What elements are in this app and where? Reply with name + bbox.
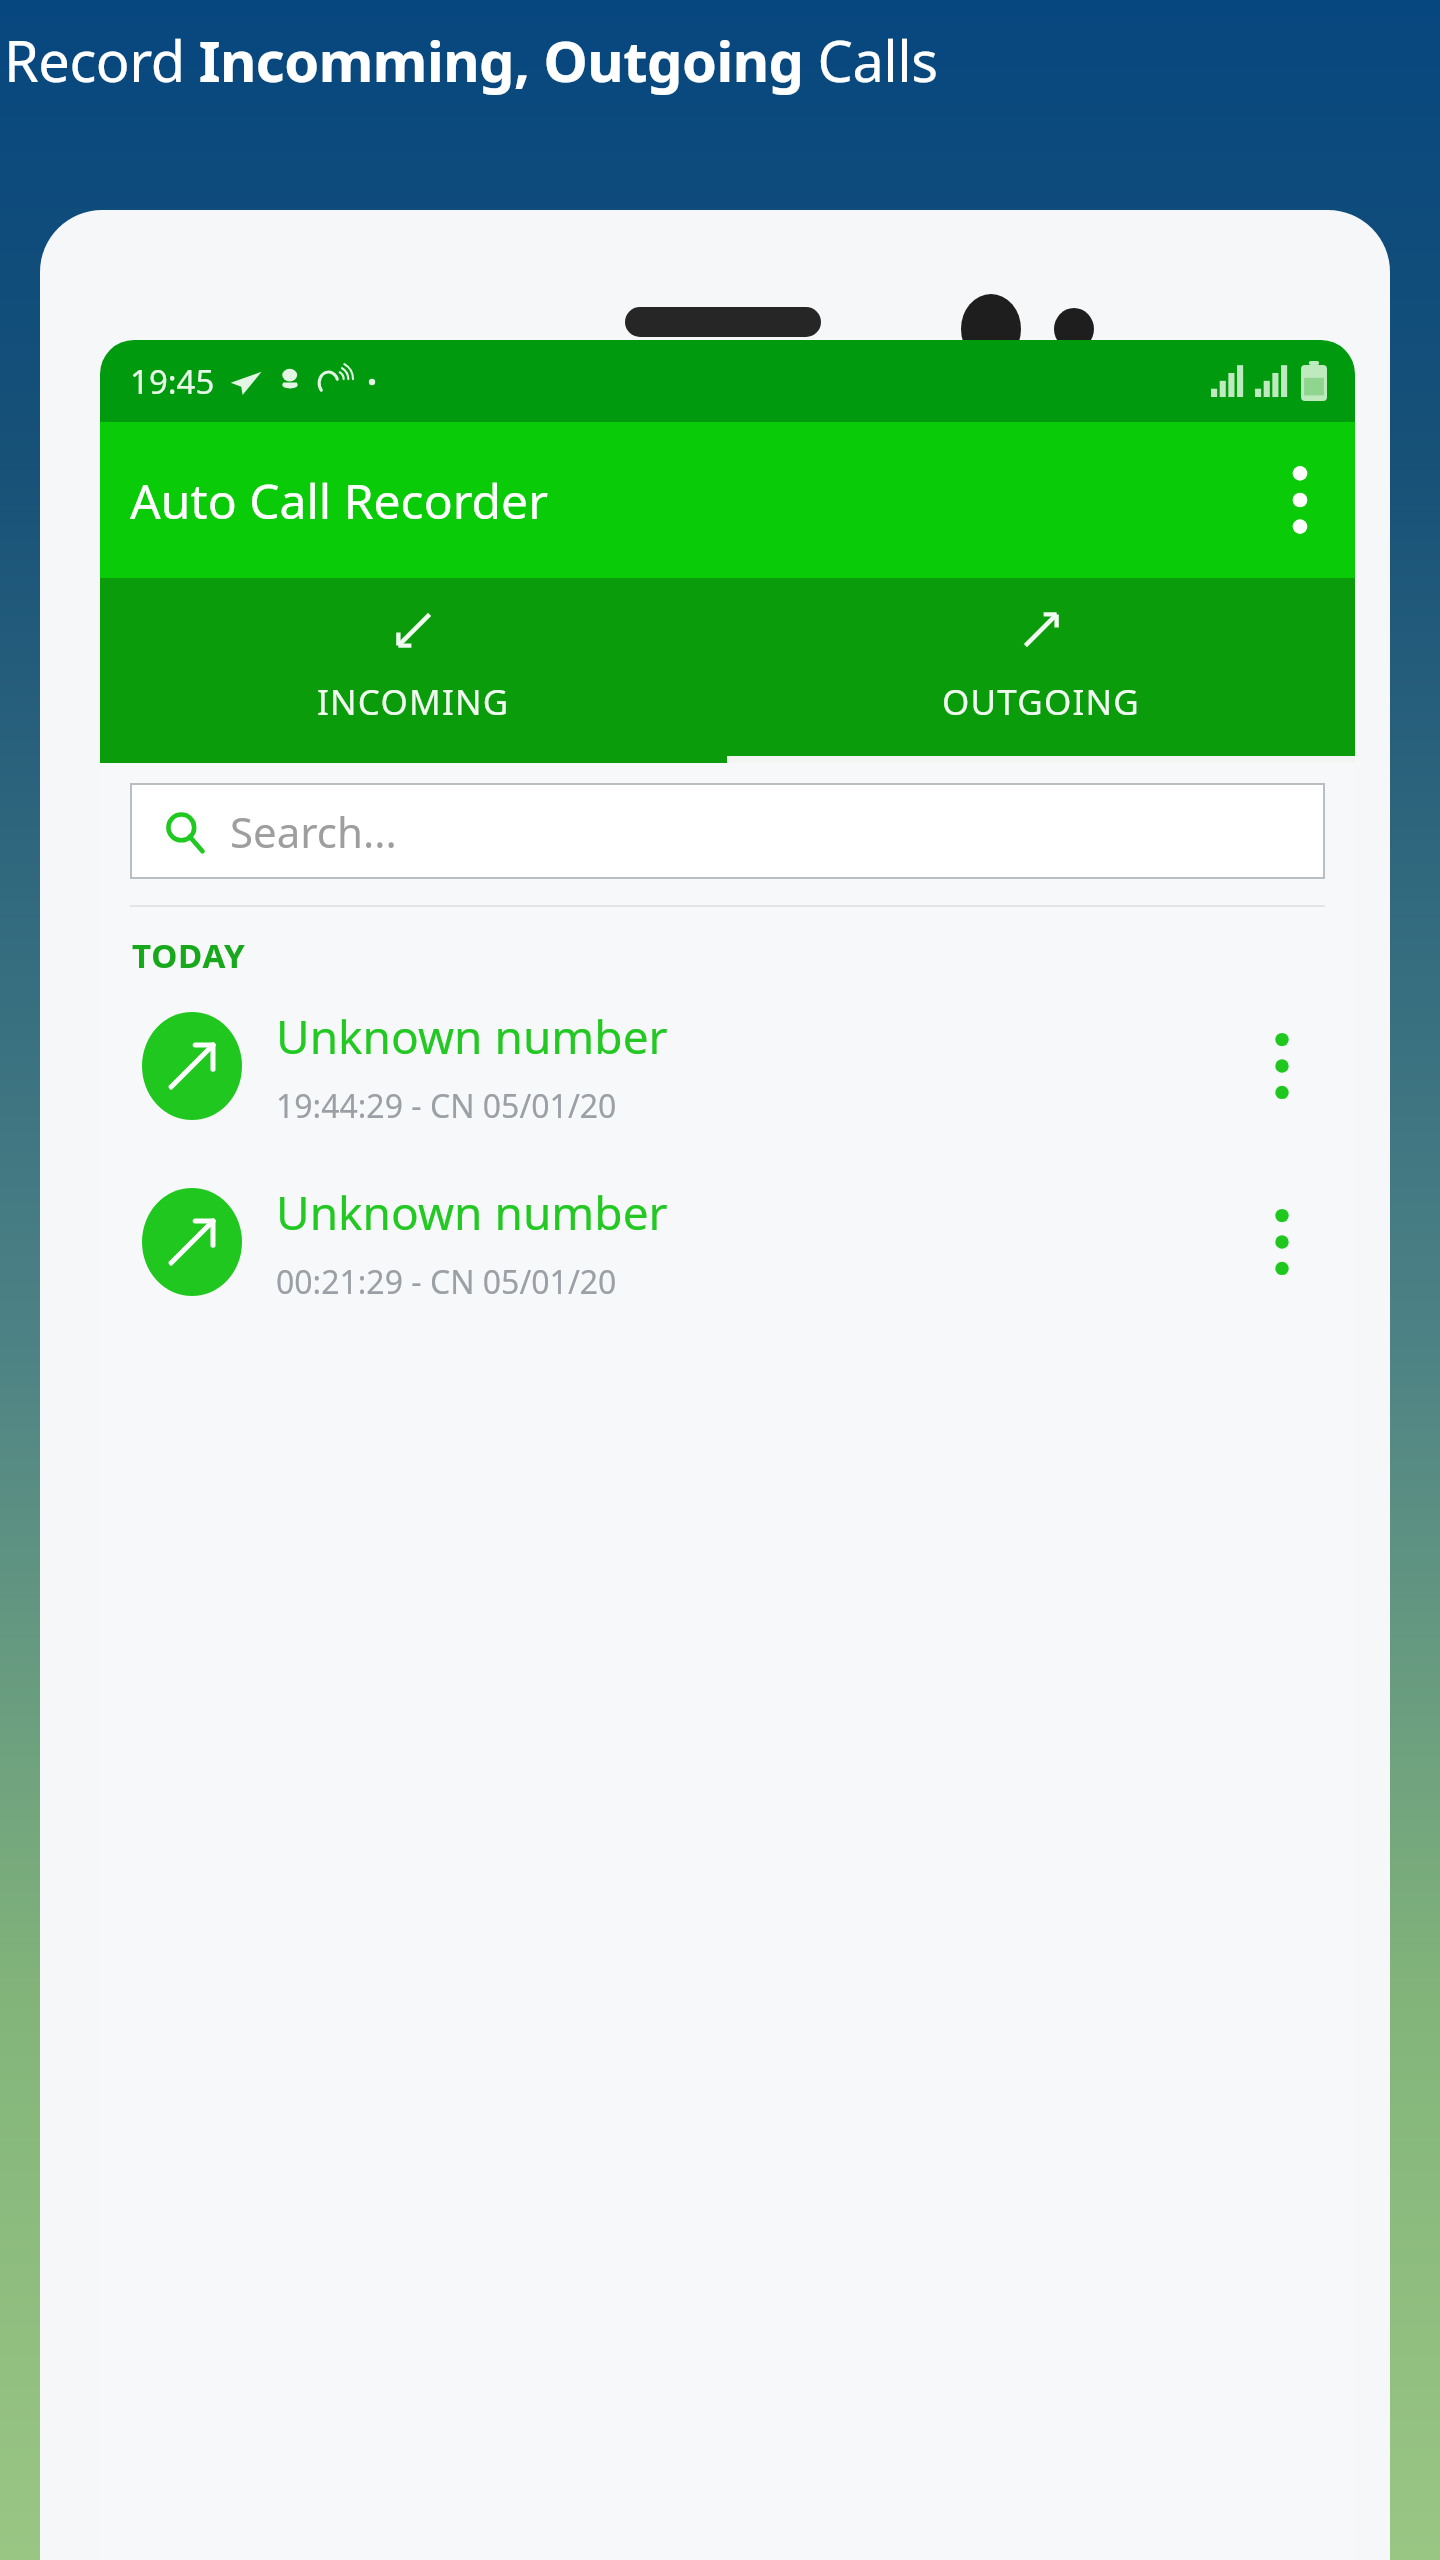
- staticText: 19:44:29 - CN 05/01/20: [276, 1084, 617, 1128]
- staticText: Unknown number: [276, 1005, 668, 1068]
- button[interactable]: Recording options: [1239, 1182, 1325, 1302]
- staticText: 19:45: [130, 359, 215, 404]
- button[interactable]: Unknown number: [100, 978, 1355, 1154]
- button[interactable]: Search...: [130, 783, 1325, 879]
- staticText: INCOMING: [317, 678, 510, 726]
- staticText: Search...: [230, 803, 397, 860]
- staticText: Unknown number: [276, 1181, 668, 1244]
- staticText: Auto Call Recorder: [130, 468, 548, 533]
- staticText: TODAY: [132, 933, 246, 978]
- button[interactable]: INCOMING: [100, 578, 727, 763]
- button[interactable]: Unknown number: [100, 1154, 1355, 1330]
- button[interactable]: OUTGOING: [727, 578, 1355, 763]
- staticText: Record Incomming, Outgoing Calls: [4, 22, 938, 98]
- staticText: OUTGOING: [942, 678, 1141, 726]
- staticText: 00:21:29 - CN 05/01/20: [276, 1260, 617, 1304]
- button[interactable]: More options: [1245, 422, 1355, 578]
- button[interactable]: Recording options: [1239, 1006, 1325, 1126]
